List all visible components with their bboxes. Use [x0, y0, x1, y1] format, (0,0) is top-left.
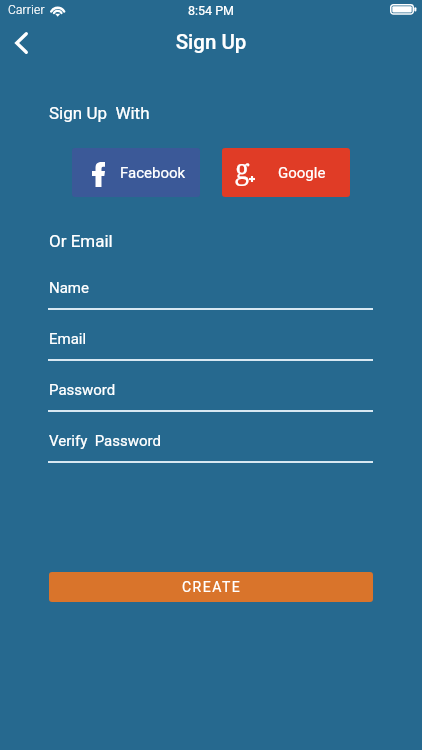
staticText: CREATE: [182, 579, 242, 595]
button[interactable]: CREATE: [49, 572, 373, 602]
button[interactable]: g: [222, 148, 350, 197]
button[interactable]: Back: [1, 24, 41, 62]
staticText: Google: [278, 164, 326, 182]
staticText: Password: [49, 381, 116, 399]
staticText: Carrier: [8, 3, 45, 17]
staticText: 8:54 PM: [0, 3, 422, 18]
button[interactable]: Facebook: [72, 148, 200, 197]
staticText: Sign Up: [0, 30, 422, 54]
staticText: Email: [49, 330, 87, 348]
staticText: Name: [49, 279, 89, 297]
staticText: Verify Password: [49, 432, 161, 450]
staticText: Sign Up With: [49, 103, 150, 123]
staticText: Facebook: [120, 164, 186, 182]
staticText: g: [235, 150, 250, 187]
staticText: Or Email: [49, 231, 113, 251]
